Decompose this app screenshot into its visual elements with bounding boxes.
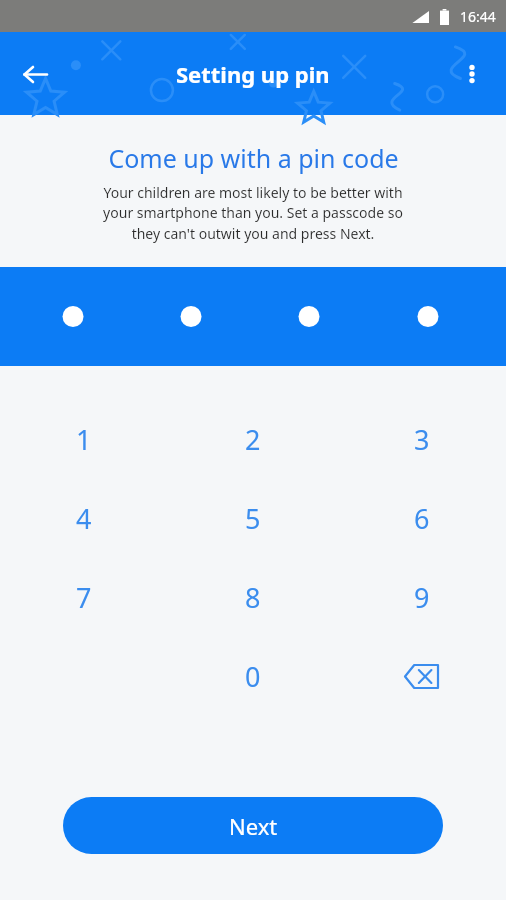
button[interactable]: 4 <box>0 479 168 558</box>
button[interactable]: 3 <box>337 400 506 479</box>
staticText: 8 <box>245 579 261 616</box>
staticText: Setting up pin <box>176 59 330 89</box>
button[interactable]: 8 <box>168 558 337 637</box>
staticText: 0 <box>245 658 261 695</box>
staticText: 4 <box>76 500 92 537</box>
button[interactable]: 9 <box>337 558 506 637</box>
button[interactable]: Next <box>63 797 443 854</box>
staticText: 3 <box>414 421 430 458</box>
staticText: Come up with a pin code <box>108 141 399 175</box>
staticText: 16:44 <box>460 7 496 26</box>
button[interactable]: 2 <box>168 400 337 479</box>
button[interactable]: Back <box>12 51 58 97</box>
button[interactable]: 7 <box>0 558 168 637</box>
staticText: Next <box>229 811 278 841</box>
staticText: 1 <box>76 421 92 458</box>
button[interactable]: 1 <box>0 400 168 479</box>
staticText: Your children are most likely to be bett… <box>103 183 403 244</box>
staticText: 9 <box>414 579 430 616</box>
staticText: 6 <box>414 500 430 537</box>
button[interactable]: 0 <box>168 637 337 716</box>
button[interactable]: Backspace <box>337 637 506 716</box>
button[interactable]: 5 <box>168 479 337 558</box>
staticText: 7 <box>76 579 92 616</box>
button[interactable]: 6 <box>337 479 506 558</box>
staticText: 2 <box>245 421 261 458</box>
staticText: 5 <box>245 500 261 537</box>
button[interactable]: More options <box>449 51 495 97</box>
